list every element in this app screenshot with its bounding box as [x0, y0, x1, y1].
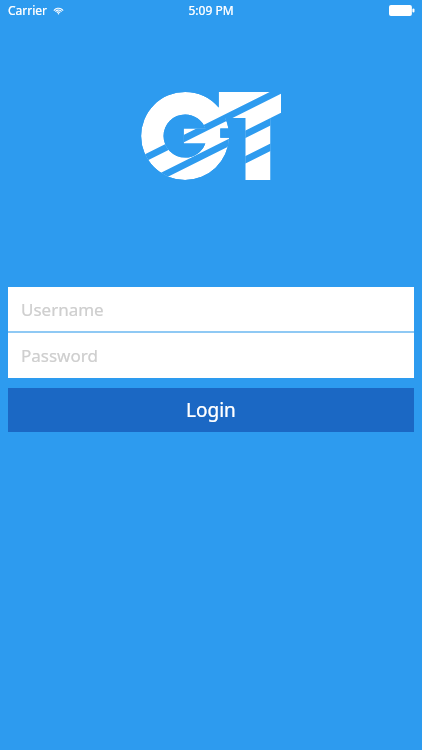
staticText: Login [186, 397, 236, 423]
staticText: Carrier [8, 2, 48, 18]
staticText: Password [21, 344, 98, 367]
staticText: 5:09 PM [188, 2, 234, 18]
staticText: Username [21, 298, 104, 321]
button[interactable]: Username [8, 287, 414, 331]
button[interactable]: Password [8, 333, 414, 378]
button[interactable]: Login [8, 388, 414, 432]
